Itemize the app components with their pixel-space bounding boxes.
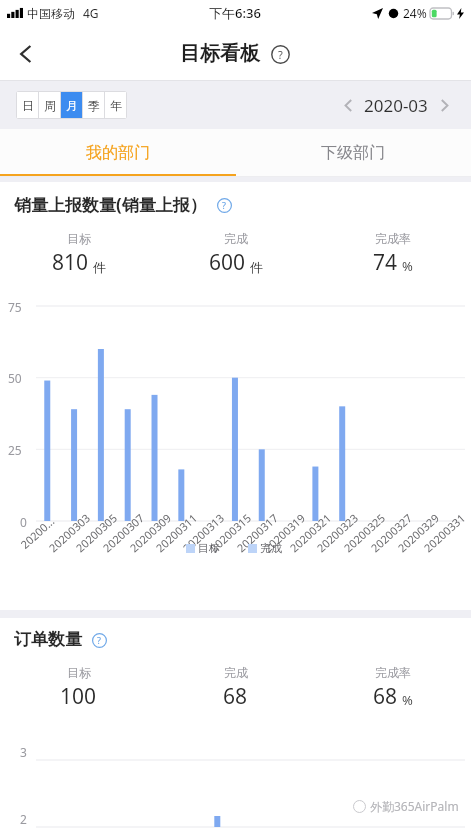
staticText: 目标 [67, 665, 91, 680]
staticText: 目标看板 [180, 41, 260, 66]
staticText: 20200325 [340, 510, 388, 555]
staticText: 20200327 [367, 510, 415, 555]
button[interactable]: 下级部门 [235, 129, 471, 177]
staticText: ? [222, 199, 226, 211]
staticText: ? [97, 634, 101, 646]
staticText: 20200329 [394, 510, 442, 555]
staticText: 20200303 [45, 510, 93, 555]
staticText: 75 [8, 299, 22, 315]
staticText: 20200... [17, 513, 58, 552]
staticText: 100 [60, 682, 97, 711]
staticText: 目标 [67, 231, 91, 246]
staticText: 日 [22, 98, 34, 113]
staticText: 4G [83, 5, 99, 21]
staticText: 20200307 [99, 510, 147, 555]
button[interactable]: 日 [17, 92, 38, 118]
staticText: 中国移动 [27, 6, 75, 21]
staticText: 目标 [198, 541, 220, 555]
staticText: 外勤365AirPalm [370, 798, 459, 814]
button[interactable]: Info [90, 631, 108, 649]
staticText: 24% [403, 5, 427, 21]
staticText: 季 [88, 98, 100, 113]
staticText: 2020-03 [364, 94, 428, 117]
button[interactable]: 季 [83, 92, 104, 118]
staticText: % [402, 257, 413, 275]
staticText: 74 [373, 248, 398, 277]
staticText: 20200313 [179, 510, 227, 555]
button[interactable]: Help [269, 43, 291, 65]
staticText: 68 [223, 682, 248, 711]
staticText: 2 [20, 811, 27, 827]
staticText: 销量上报数量(销量上报） [14, 193, 207, 216]
staticText: 20200315 [206, 510, 254, 555]
staticText: 我的部门 [86, 143, 150, 163]
staticText: 周 [44, 98, 56, 113]
staticText: 完成 [224, 665, 248, 680]
staticText: 68 [373, 682, 398, 711]
staticText: 20200323 [313, 510, 361, 555]
staticText: 600 [209, 248, 246, 277]
button[interactable]: 年 [105, 92, 126, 118]
staticText: 20200321 [286, 510, 334, 555]
staticText: 20200309 [126, 510, 174, 555]
staticText: 20200305 [72, 510, 120, 555]
staticText: 20200317 [233, 510, 281, 555]
staticText: 订单数量 [14, 629, 82, 650]
staticText: 完成率 [375, 665, 411, 680]
staticText: 0 [20, 514, 27, 530]
button[interactable]: Back [3, 31, 49, 77]
button[interactable]: 我的部门 [0, 129, 235, 177]
staticText: 50 [8, 370, 22, 386]
staticText: % [402, 691, 413, 709]
staticText: 3 [20, 744, 27, 760]
staticText: 20200331 [420, 510, 468, 555]
staticText: 年 [110, 98, 122, 113]
staticText: 完成 [260, 541, 282, 555]
staticText: 完成 [224, 231, 248, 246]
staticText: 下午6:36 [209, 4, 261, 22]
button[interactable]: Next period [431, 92, 457, 118]
staticText: 月 [66, 98, 78, 113]
staticText: 件 [93, 259, 106, 275]
staticText: 20200311 [152, 510, 200, 555]
button[interactable]: 周 [39, 92, 60, 118]
button[interactable]: Info [215, 196, 233, 214]
staticText: 完成率 [375, 231, 411, 246]
staticText: 件 [250, 259, 263, 275]
button[interactable]: Previous period [335, 92, 361, 118]
staticText: 810 [52, 248, 89, 277]
staticText: 25 [8, 442, 22, 458]
button[interactable]: 月 [61, 92, 82, 118]
staticText: 20200319 [260, 510, 308, 555]
staticText: ? [278, 47, 283, 62]
staticText: 下级部门 [321, 143, 385, 163]
